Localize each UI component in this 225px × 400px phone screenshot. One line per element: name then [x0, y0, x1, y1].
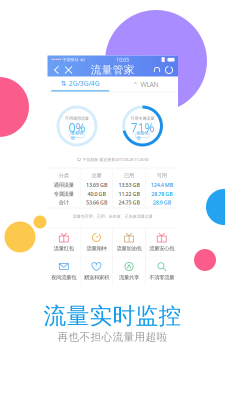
staticText: 可用通用流量	[65, 116, 89, 121]
button[interactable]: 流量安心包	[145, 228, 178, 256]
staticText: 13.53 GB	[119, 181, 140, 189]
button[interactable]: ⌃ WLAN	[113, 77, 178, 92]
staticText: ⌃ WLAN	[132, 80, 158, 89]
staticText: 通用流量	[54, 182, 74, 188]
staticText: 24.75 GB	[119, 199, 140, 206]
staticText: 53.66 GB	[86, 199, 107, 206]
staticText: 专属流量	[54, 191, 74, 197]
staticText: 流量红包	[54, 245, 74, 252]
staticText: 流量包可用、已用、未生效、已失效流量总量	[73, 214, 153, 219]
staticText: 71%	[130, 119, 154, 135]
button[interactable]: 夜间流量包	[47, 257, 80, 285]
staticText: 可用	[157, 172, 167, 179]
staticText: 分类	[59, 172, 69, 179]
staticText: 夜间流量包	[51, 274, 76, 281]
staticText: 再也不担心流量用超啦	[57, 330, 167, 343]
staticText: 28.78 GB	[151, 190, 172, 198]
staticText: 赠送和家积	[84, 274, 109, 281]
staticText: 11.22 GB	[119, 190, 140, 198]
staticText: 124.4 MB	[151, 181, 173, 189]
button[interactable]: 流量闹钟	[80, 228, 113, 256]
staticText: 流量安心包	[149, 245, 174, 252]
staticText: 28.9 GB	[153, 199, 171, 206]
staticText: 流量加油包	[117, 245, 142, 252]
button[interactable]: 查看明细	[69, 133, 84, 138]
button[interactable]: Back	[50, 63, 62, 76]
staticText: 中国移动	[62, 57, 78, 62]
button[interactable]: 查看明细	[135, 133, 150, 138]
staticText: 可用专属流量	[130, 116, 154, 121]
staticText: 查看明细	[136, 131, 148, 140]
staticText: 流量闹钟	[86, 245, 106, 252]
staticText: 10:05	[116, 56, 129, 63]
button[interactable]: 流量红包	[47, 228, 80, 256]
button[interactable]: 不清零流量	[145, 257, 178, 285]
staticText: 流量共享	[119, 274, 139, 281]
staticText: 合计	[59, 199, 69, 206]
staticText: 下拉刷新 最近更新2017-06-28 11:26:50	[82, 157, 148, 162]
staticText: 流量实时监控	[43, 302, 181, 330]
staticText: 不清零流量	[149, 274, 174, 281]
staticText: ⇅ 2G/3G/4G	[61, 79, 100, 88]
staticText: 40.0 GB	[87, 190, 105, 198]
staticText: 13.65 GB	[86, 181, 107, 189]
button[interactable]: Customer service	[151, 63, 163, 76]
button[interactable]: Close	[62, 63, 74, 76]
staticText: 已用	[124, 172, 134, 179]
button[interactable]: Refresh	[163, 63, 175, 76]
button[interactable]: ⇅ 2G/3G/4G	[47, 77, 113, 92]
button[interactable]: 流量加油包	[113, 228, 145, 256]
staticText: •••••	[51, 56, 61, 63]
staticText: ▐▌	[160, 57, 166, 62]
staticText: 0%	[68, 119, 85, 135]
button[interactable]: 流量共享	[113, 257, 145, 285]
staticText: 4G	[80, 57, 85, 62]
staticText: 查看明细	[71, 131, 83, 140]
button[interactable]: 赠送和家积	[80, 257, 113, 285]
staticText: 流量管家	[91, 63, 135, 76]
staticText: 总量	[91, 172, 101, 179]
